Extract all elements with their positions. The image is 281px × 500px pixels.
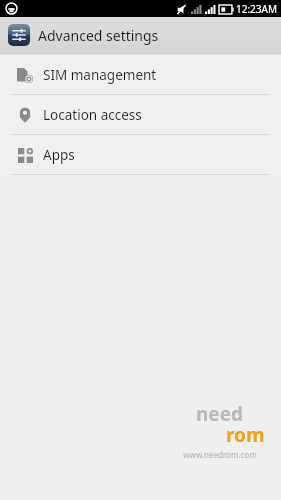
staticText: rom [226, 422, 265, 448]
staticText: need [196, 401, 244, 427]
staticText: 12:23AM [236, 2, 278, 16]
staticText: Location access [43, 106, 142, 124]
button[interactable]: Apps [0, 135, 281, 174]
button[interactable]: Advanced settings [0, 17, 281, 53]
button[interactable]: Location access [0, 95, 281, 134]
staticText: www.needrom.com [183, 449, 257, 460]
staticText: Apps [43, 146, 75, 164]
button[interactable]: SIM management [0, 55, 281, 94]
staticText: Advanced settings [38, 26, 159, 45]
staticText: SIM management [43, 66, 157, 84]
